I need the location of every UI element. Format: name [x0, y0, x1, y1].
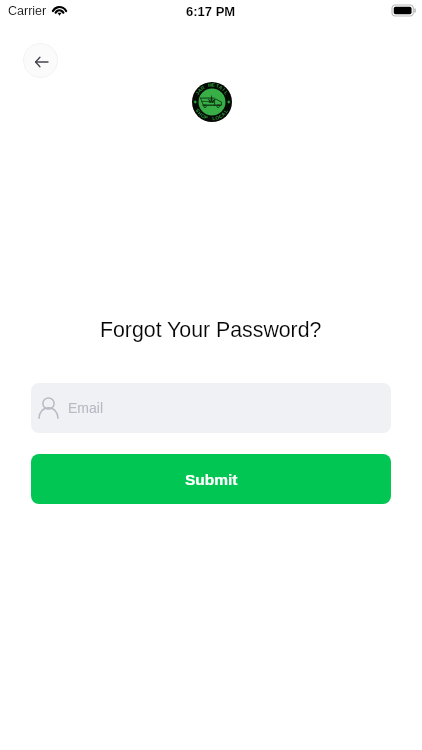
button[interactable]: Back — [23, 43, 58, 78]
staticText: 6:17 PM — [186, 4, 236, 19]
staticText: Email — [68, 400, 104, 416]
button[interactable]: Submit — [31, 454, 391, 504]
staticText: Forgot Your Password? — [100, 318, 322, 342]
button[interactable]: Email — [31, 383, 391, 433]
staticText: Submit — [185, 471, 238, 488]
staticText: Carrier — [8, 4, 47, 18]
